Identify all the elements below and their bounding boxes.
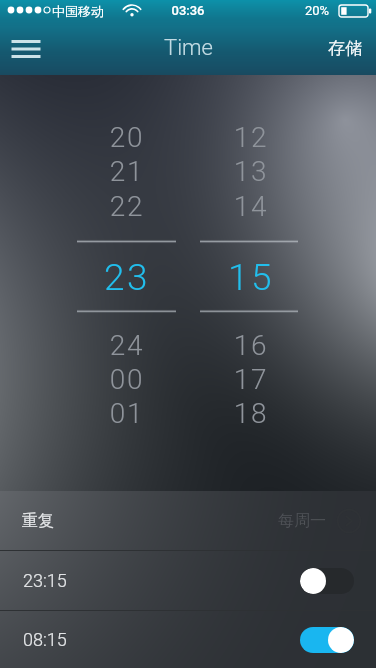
staticText: 每周一 — [278, 511, 326, 531]
staticText: 中国移动 — [52, 3, 104, 19]
button[interactable]: 20 — [77, 121, 177, 154]
button[interactable]: Alarm enabled — [300, 627, 354, 653]
button[interactable]: 13 — [201, 155, 301, 188]
button[interactable]: Alarm disabled — [300, 568, 354, 594]
button[interactable]: 24 — [77, 329, 177, 362]
staticText: Time — [164, 35, 213, 61]
button[interactable]: 16 — [201, 329, 301, 362]
button[interactable]: 01 — [77, 397, 177, 430]
staticText: 20 — [77, 121, 177, 154]
button[interactable]: 15 — [201, 256, 301, 299]
button[interactable]: 12 — [201, 121, 301, 154]
staticText: 17 — [201, 363, 301, 396]
staticText: 23 — [77, 256, 177, 299]
staticText: 22 — [77, 190, 177, 223]
staticText: 20% — [305, 3, 330, 18]
button[interactable]: 00 — [77, 363, 177, 396]
button[interactable]: 23 — [77, 256, 177, 299]
staticText: 21 — [77, 155, 177, 188]
button[interactable]: 17 — [201, 363, 301, 396]
staticText: 01 — [77, 397, 177, 430]
staticText: 23:15 — [23, 570, 67, 591]
staticText: 重复 — [22, 511, 54, 531]
staticText: 14 — [201, 190, 301, 223]
staticText: 16 — [201, 329, 301, 362]
button[interactable]: 18 — [201, 397, 301, 430]
button[interactable]: 存储 — [322, 29, 368, 68]
staticText: 08:15 — [23, 629, 67, 650]
staticText: 00 — [77, 363, 177, 396]
staticText: 24 — [77, 329, 177, 362]
button[interactable]: Open navigation menu — [3, 26, 49, 72]
button[interactable]: 14 — [201, 190, 301, 223]
staticText: 存储 — [328, 38, 362, 59]
button[interactable]: 重复 — [0, 491, 376, 550]
staticText: 18 — [201, 397, 301, 430]
staticText: 03:36 — [0, 3, 376, 18]
staticText: 15 — [201, 256, 301, 299]
button[interactable]: 08:15 — [0, 611, 376, 668]
button[interactable]: 23:15 — [0, 551, 376, 610]
staticText: 12 — [201, 121, 301, 154]
button[interactable]: 22 — [77, 190, 177, 223]
button[interactable]: 21 — [77, 155, 177, 188]
staticText: 13 — [201, 155, 301, 188]
